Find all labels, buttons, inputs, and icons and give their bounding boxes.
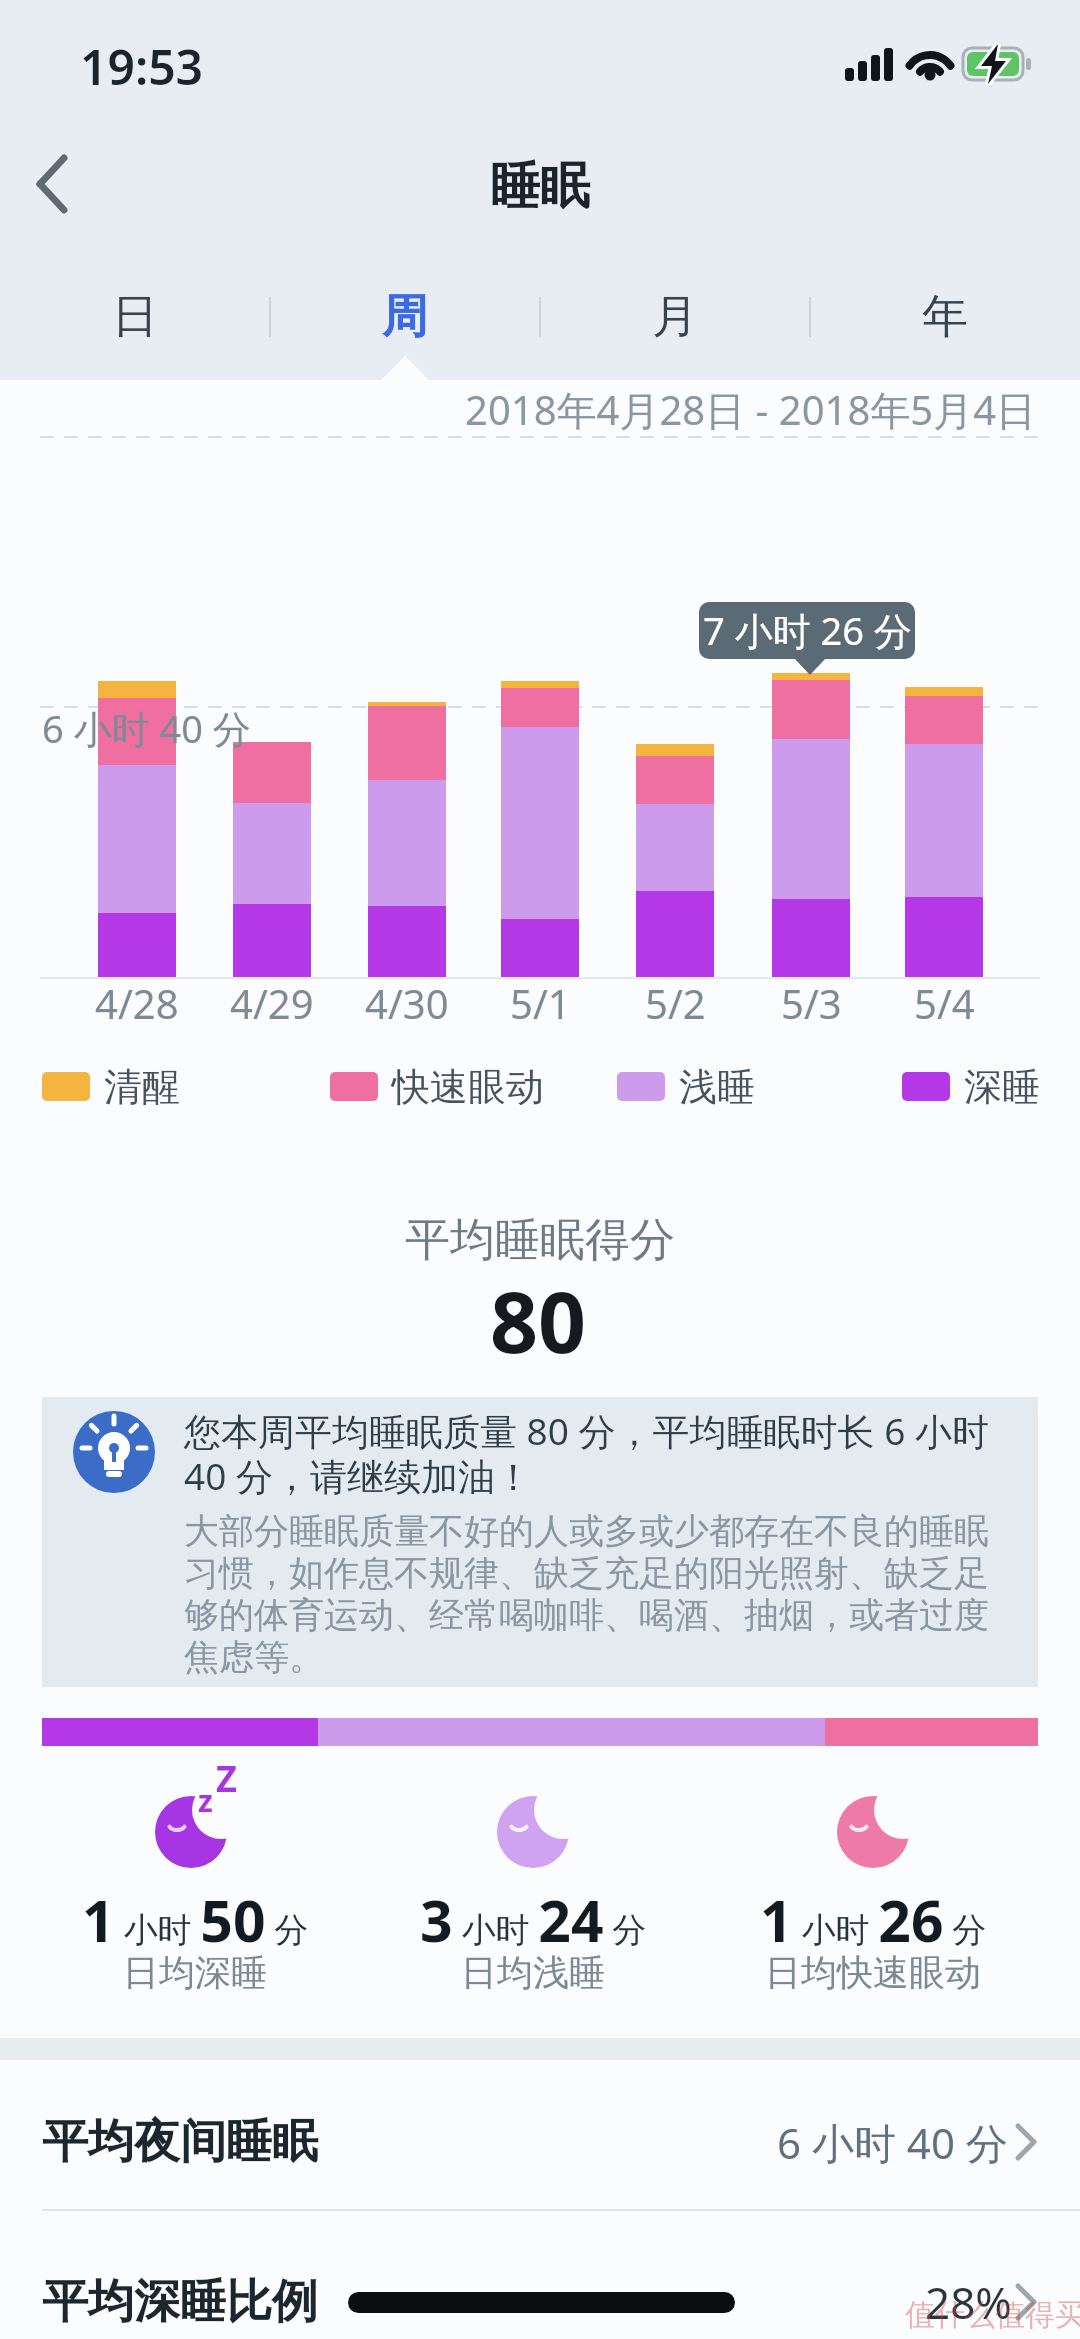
button[interactable] [540,280,810,356]
staticText: 5/3 [781,976,842,1030]
staticText: 80 [490,1263,587,1363]
staticText: 平均夜间睡眠 [42,2113,318,2171]
staticText: 5/2 [645,976,706,1030]
staticText: 够的体育运动、经常喝咖啡、喝酒、抽烟，或者过度 [184,1593,989,1637]
staticText: 5/4 [914,976,975,1030]
staticText: 习惯，如作息不规律、缺乏充足的阳光照射、缺乏足 [184,1551,989,1595]
staticText: 28% [925,2272,1012,2332]
staticText: 4/30 [365,976,449,1030]
staticText: Z [216,1754,237,1803]
staticText: 焦虑等。 [184,1635,324,1679]
staticText: 4/29 [230,976,314,1030]
staticText: 年 [922,288,968,346]
staticText: 6 小时 40 分 [42,702,251,754]
button[interactable] [0,280,270,356]
staticText: 平均深睡比例 [42,2273,318,2331]
staticText: 快速眼动 [392,1063,544,1111]
button[interactable] [0,2074,1080,2210]
button[interactable] [0,2212,1080,2339]
staticText: 19:53 [80,34,204,99]
button[interactable] [270,280,540,356]
staticText: 大部分睡眠质量不好的人或多或少都存在不良的睡眠 [184,1509,989,1553]
staticText: 5/1 [510,976,571,1030]
staticText: 7 小时 26 分 [703,604,912,656]
staticText: 您本周平均睡眠质量 80 分，平均睡眠时长 6 小时 [184,1405,989,1456]
staticText: 睡眠 [490,155,590,218]
staticText: 40 分，请继续加油！ [184,1450,532,1501]
button[interactable] [810,280,1080,356]
staticText: 日均深睡 [123,1950,267,1995]
staticText: 清醒 [104,1063,180,1111]
staticText: 2018年4月28日 - 2018年5月4日 [465,382,1037,437]
staticText: 日均浅睡 [461,1950,605,1995]
button[interactable] [16,146,88,226]
staticText: 4/28 [95,976,179,1030]
staticText: z [198,1780,213,1821]
staticText: 6 小时 40 分 [777,2114,1008,2171]
staticText: 1 小时 26 分 [760,1881,987,1959]
staticText: 日 [112,288,158,346]
staticText: 浅睡 [679,1063,755,1111]
staticText: 周 [382,288,428,346]
staticText: 1 小时 50 分 [82,1881,309,1959]
staticText: 日均快速眼动 [765,1950,981,1995]
staticText: 月 [652,288,698,346]
staticText: 平均睡眠得分 [405,1212,675,1269]
staticText: 值什么值得买 [905,2296,1080,2334]
staticText: 深睡 [964,1063,1040,1111]
staticText: 3 小时 24 分 [420,1881,647,1959]
